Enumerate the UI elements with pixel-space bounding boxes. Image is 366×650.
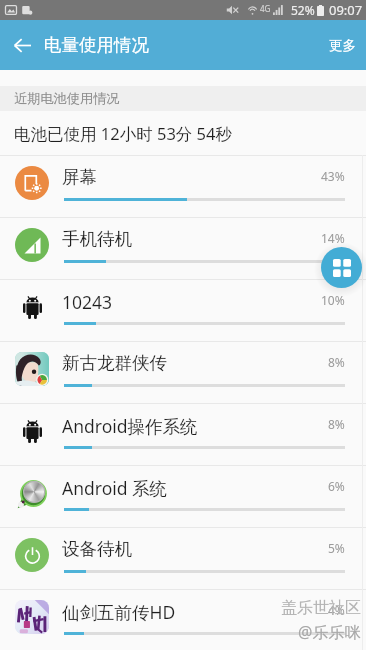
staticText: 电池已使用 12小时 53分 54秒 bbox=[14, 122, 232, 145]
staticText: 设备待机 bbox=[62, 538, 132, 560]
staticText: 4G bbox=[260, 3, 271, 14]
staticText: 52% bbox=[291, 2, 315, 18]
staticText: 8% bbox=[328, 354, 345, 370]
staticText: 盖乐世社区 bbox=[281, 598, 361, 618]
staticText: 新古龙群侠传 bbox=[62, 352, 167, 374]
staticText: 更多 bbox=[329, 37, 356, 54]
button[interactable]: 手机待机 bbox=[0, 217, 366, 279]
button[interactable]: Apps bbox=[321, 247, 362, 288]
staticText: Android操作系统 bbox=[62, 414, 198, 438]
button[interactable]: 10243 bbox=[0, 279, 366, 341]
button[interactable]: Back bbox=[0, 23, 44, 67]
button[interactable]: 屏幕 bbox=[0, 155, 366, 217]
staticText: 09:07 bbox=[329, 1, 363, 19]
button[interactable]: 设备待机 bbox=[0, 527, 366, 589]
button[interactable]: Android 系统 bbox=[0, 465, 366, 527]
staticText: @乐乐咪 bbox=[298, 621, 361, 643]
button[interactable]: 新古龙群侠传 bbox=[0, 341, 366, 403]
staticText: 仙剑五前传HD bbox=[62, 600, 176, 624]
staticText: 43% bbox=[321, 168, 345, 184]
staticText: 10% bbox=[321, 292, 345, 308]
staticText: Android 系统 bbox=[62, 476, 168, 500]
staticText: 4% bbox=[328, 602, 345, 618]
staticText: 5% bbox=[328, 540, 345, 556]
staticText: 近期电池使用情况 bbox=[14, 90, 120, 107]
button[interactable]: Android操作系统 bbox=[0, 403, 366, 465]
staticText: 电量使用情况 bbox=[44, 34, 149, 56]
staticText: 6% bbox=[328, 478, 345, 494]
button[interactable]: 仙剑五前传HD bbox=[0, 589, 366, 650]
staticText: 8% bbox=[328, 416, 345, 432]
staticText: 屏幕 bbox=[62, 166, 97, 188]
staticText: 手机待机 bbox=[62, 228, 132, 250]
button[interactable]: 更多 bbox=[329, 37, 356, 54]
staticText: 14% bbox=[321, 230, 345, 246]
staticText: 10243 bbox=[62, 290, 113, 314]
